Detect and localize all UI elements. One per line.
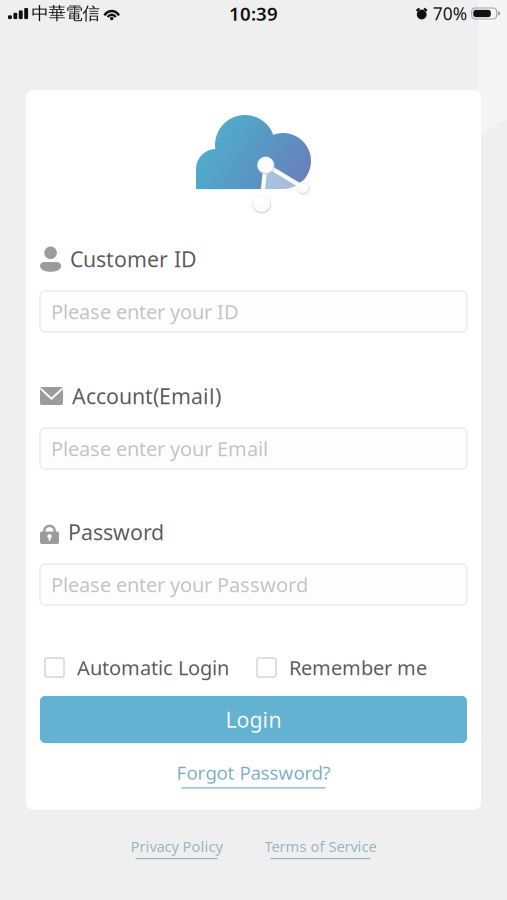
button[interactable]: Login (40, 696, 467, 743)
button[interactable]: Please enter your Email (40, 428, 467, 469)
staticText: Terms of Service (264, 836, 376, 856)
staticText: Forgot Password? (176, 760, 330, 785)
staticText: Account(Email) (72, 382, 221, 410)
staticText: 中華電信 (31, 3, 99, 24)
staticText: Please enter your Email (51, 435, 268, 462)
button[interactable]: Terms of Service (264, 836, 376, 859)
button[interactable]: Please enter your Password (40, 564, 467, 605)
staticText: 10:39 (229, 1, 278, 26)
button[interactable]: Privacy Policy (130, 836, 222, 859)
staticText: Customer ID (70, 245, 197, 273)
staticText: Password (68, 518, 164, 546)
button[interactable]: Remember me (257, 654, 427, 681)
staticText: Privacy Policy (130, 836, 222, 856)
staticText: 70% (433, 2, 467, 25)
staticText: Automatic Login (77, 654, 229, 681)
button[interactable]: Automatic Login (45, 654, 229, 681)
staticText: Please enter your Password (51, 571, 308, 598)
staticText: Login (225, 705, 281, 734)
button[interactable]: Forgot Password? (40, 760, 467, 788)
staticText: Please enter your ID (51, 298, 239, 325)
button[interactable]: Please enter your ID (40, 291, 467, 332)
staticText: Remember me (289, 654, 427, 681)
